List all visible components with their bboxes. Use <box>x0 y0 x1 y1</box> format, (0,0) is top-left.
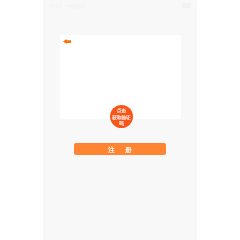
button[interactable]: 注 册 <box>74 143 166 155</box>
staticText: 点击 获取验证 码 <box>112 108 131 126</box>
staticText: 注 册 <box>108 145 132 154</box>
button[interactable]: 点击 获取验证 码 <box>110 105 133 128</box>
button[interactable]: Back <box>60 35 74 48</box>
